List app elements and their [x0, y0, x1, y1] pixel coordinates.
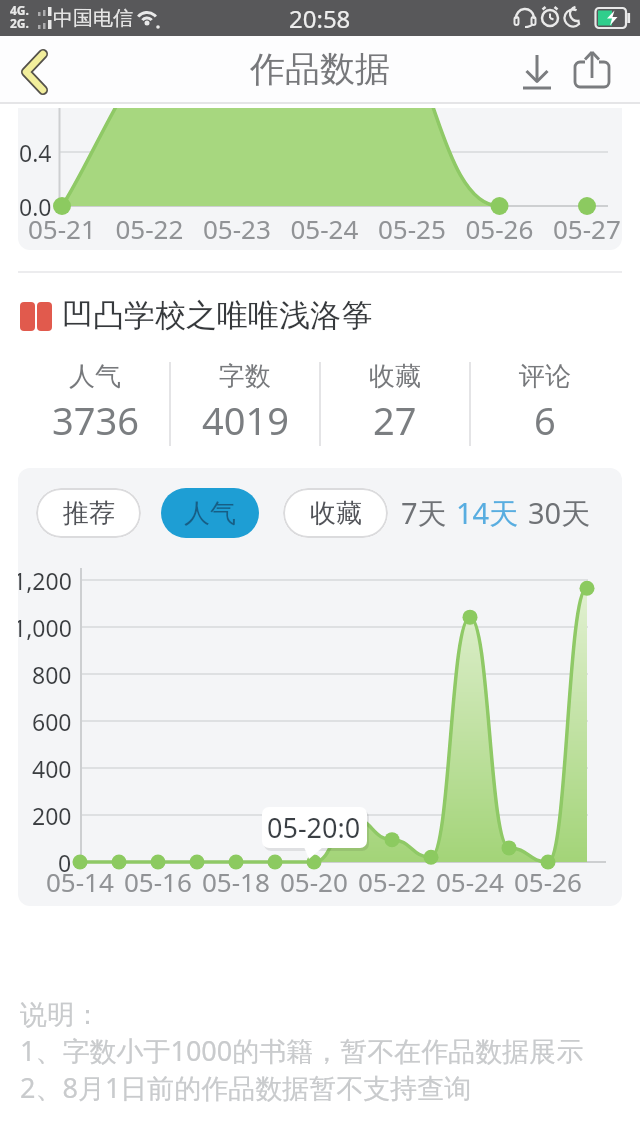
staticText: 字数: [219, 360, 271, 393]
button[interactable]: 14天: [449, 488, 525, 538]
staticText: 收藏: [369, 360, 421, 393]
staticText: 3736: [52, 394, 139, 446]
button[interactable]: [513, 46, 561, 94]
staticText: 30天: [528, 493, 591, 533]
staticText: 人气: [184, 497, 236, 530]
staticText: 中国电信: [53, 6, 133, 31]
button[interactable]: 人气: [161, 488, 259, 538]
staticText: 6: [534, 394, 556, 446]
staticText: 14天: [456, 493, 519, 533]
button[interactable]: 人气: [20, 358, 170, 450]
staticText: 7天: [401, 493, 447, 533]
button[interactable]: 评论: [470, 358, 620, 450]
button[interactable]: 字数: [170, 358, 320, 450]
button[interactable]: 7天: [393, 488, 455, 538]
staticText: 4019: [202, 394, 289, 446]
staticText: 收藏: [310, 497, 362, 530]
button[interactable]: 30天: [521, 488, 597, 538]
staticText: 评论: [519, 360, 571, 393]
staticText: 1、字数小于1000的书籍，暂不在作品数据展示: [20, 1032, 584, 1069]
staticText: 人气: [69, 360, 121, 393]
staticText: 说明：: [20, 998, 101, 1032]
button[interactable]: 收藏: [283, 488, 388, 538]
button[interactable]: 推荐: [36, 488, 141, 538]
staticText: 作品数据: [250, 47, 390, 91]
button[interactable]: 凹凸学校之唯唯浅洛筝: [20, 296, 372, 335]
staticText: 20:58: [289, 2, 351, 35]
button[interactable]: 收藏: [320, 358, 470, 450]
staticText: 27: [373, 394, 417, 446]
button[interactable]: [568, 46, 616, 94]
staticText: 推荐: [63, 497, 115, 530]
staticText: 凹凸学校之唯唯浅洛筝: [62, 296, 372, 335]
staticText: 2、8月1日前的作品数据暂不支持查询: [20, 1069, 472, 1106]
button[interactable]: [6, 42, 62, 98]
